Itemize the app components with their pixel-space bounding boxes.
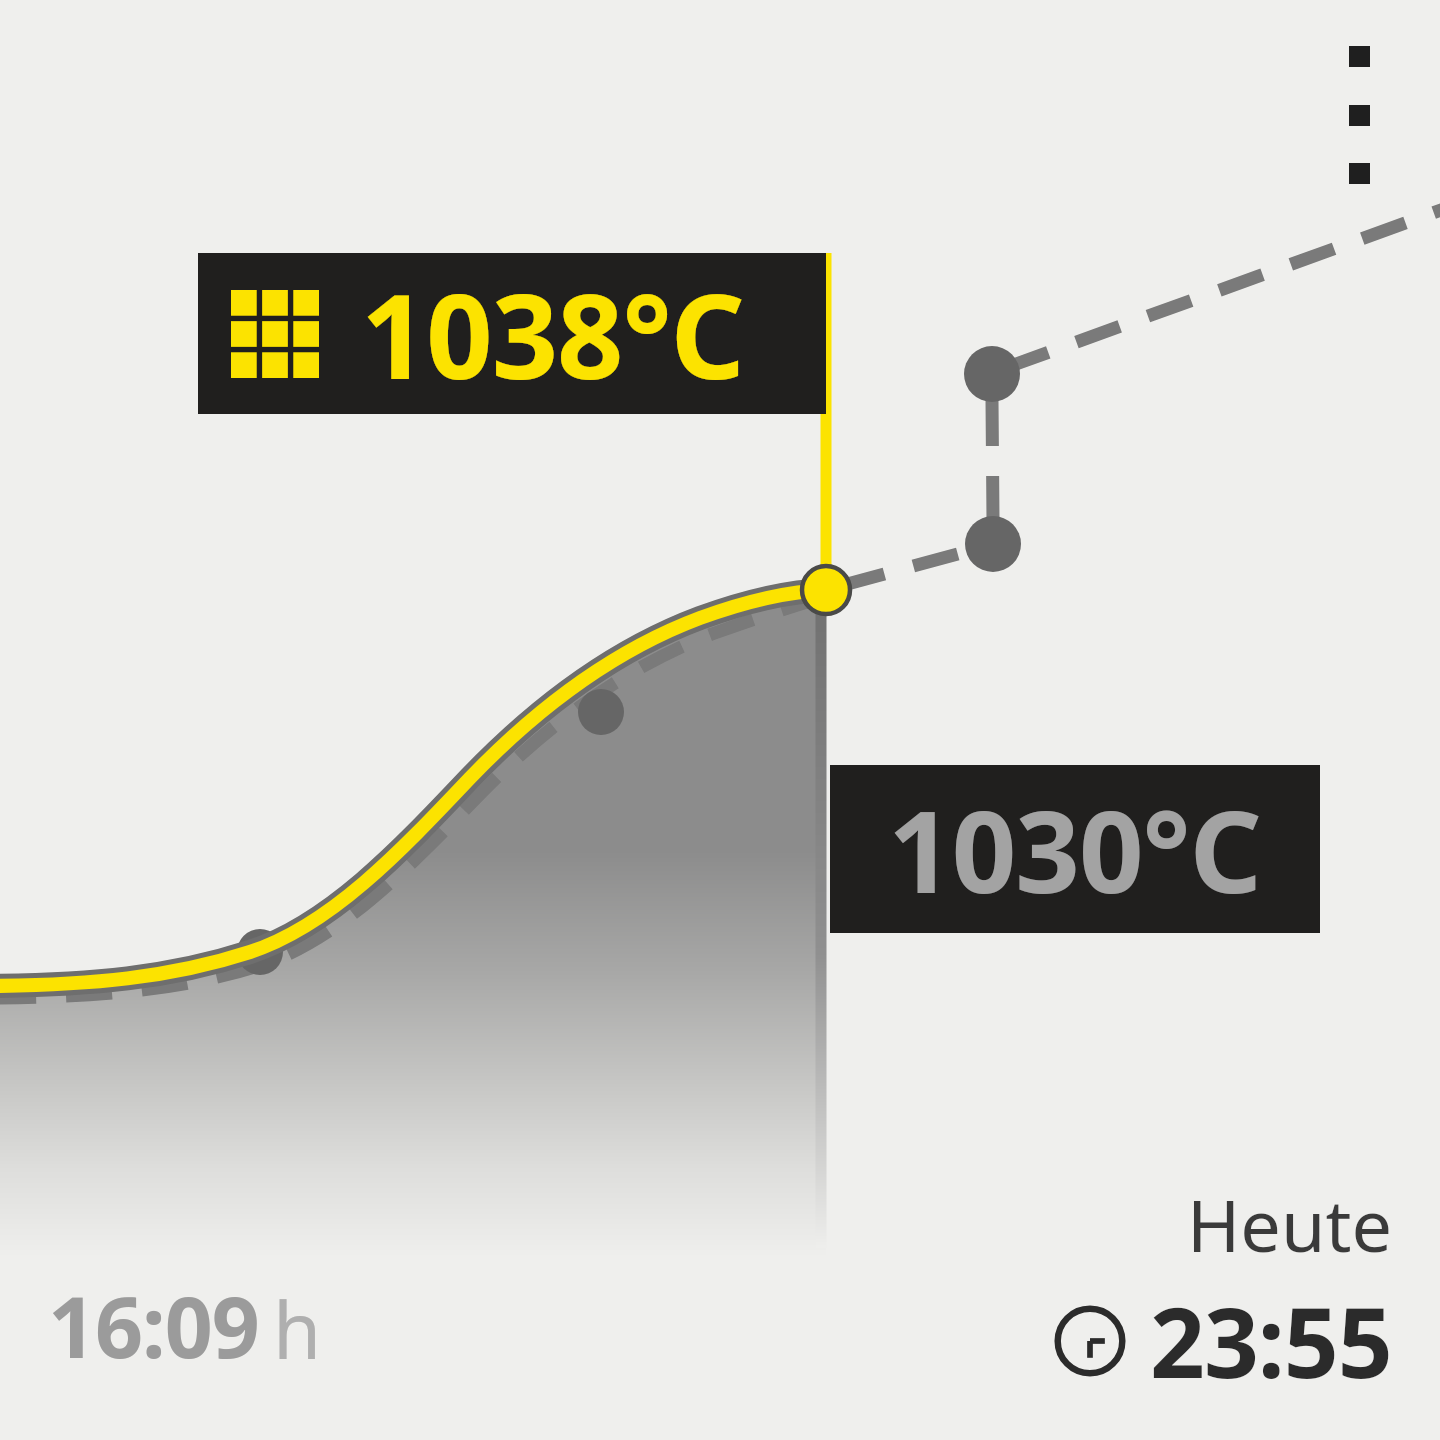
- button[interactable]: More options: [1336, 46, 1382, 184]
- button[interactable]: Target temperature: [198, 253, 826, 414]
- staticText: 23:55: [1150, 1275, 1392, 1406]
- staticText: h: [273, 1276, 322, 1382]
- button[interactable]: 1030°C: [830, 765, 1320, 933]
- staticText: 1038°C: [361, 255, 745, 413]
- other: Target temperature: [231, 284, 319, 384]
- staticText: 16:09: [48, 1268, 259, 1382]
- staticText: 1030°C: [888, 772, 1262, 926]
- other: Finish time: [1052, 1303, 1128, 1379]
- staticText: Heute: [1186, 1175, 1392, 1273]
- button[interactable]: 16:09: [48, 1268, 322, 1382]
- button[interactable]: Heute: [1052, 1175, 1392, 1406]
